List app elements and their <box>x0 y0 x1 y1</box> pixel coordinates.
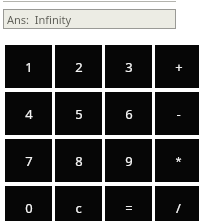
staticText: 1 <box>25 58 33 76</box>
button[interactable]: c <box>55 186 102 221</box>
button[interactable]: 4 <box>5 92 52 135</box>
button[interactable]: 1 <box>5 45 52 88</box>
staticText: 8 <box>75 152 83 170</box>
staticText: c <box>75 199 82 217</box>
staticText: 5 <box>75 105 83 123</box>
button[interactable]: 6 <box>105 92 152 135</box>
staticText: 6 <box>125 105 133 123</box>
staticText: + <box>175 58 183 76</box>
button[interactable]: 0 <box>5 186 52 221</box>
staticText: 4 <box>25 105 33 123</box>
staticText: 7 <box>25 152 33 170</box>
staticText: 3 <box>125 58 133 76</box>
staticText: = <box>125 199 133 217</box>
staticText: * <box>175 153 182 168</box>
button[interactable]: 8 <box>55 139 102 182</box>
button[interactable]: + <box>155 45 199 88</box>
staticText: 2 <box>75 58 83 76</box>
button[interactable]: 2 <box>55 45 102 88</box>
button[interactable]: 3 <box>105 45 152 88</box>
button[interactable]: * <box>155 139 199 182</box>
button[interactable]: 7 <box>5 139 52 182</box>
button[interactable]: 9 <box>105 139 152 182</box>
button[interactable]: / <box>155 186 199 221</box>
button[interactable]: 5 <box>55 92 102 135</box>
button[interactable]: Ans: Infinity <box>3 9 176 29</box>
button[interactable]: = <box>105 186 152 221</box>
button[interactable]: - <box>155 92 199 135</box>
staticText: Ans: Infinity <box>7 12 72 27</box>
staticText: - <box>176 105 181 123</box>
staticText: / <box>176 199 181 217</box>
staticText: 9 <box>125 152 133 170</box>
staticText: 0 <box>25 199 33 217</box>
